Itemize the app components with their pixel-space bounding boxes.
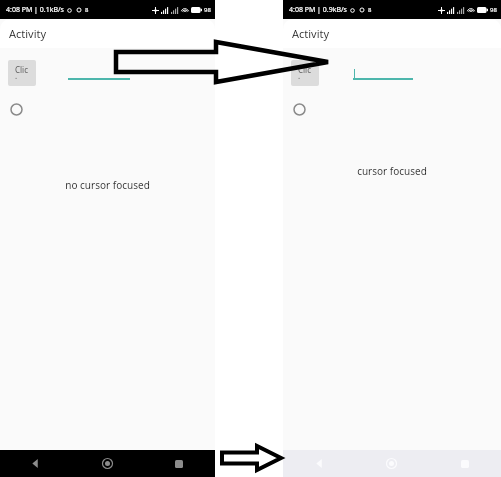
button[interactable] — [353, 66, 413, 80]
button[interactable]: Back — [0, 450, 71, 477]
button[interactable]: Clic . — [291, 60, 319, 86]
button[interactable]: Clic . — [8, 60, 36, 86]
staticText: no cursor focused — [0, 178, 215, 192]
staticText: 4:08 PM | 0.9kB/s — [289, 5, 347, 15]
staticText: Activity — [292, 26, 330, 41]
staticText: Clic . — [298, 64, 312, 82]
staticText: 8 — [85, 6, 89, 14]
staticText: 98 — [490, 6, 497, 14]
staticText: 98 — [204, 6, 211, 14]
button[interactable]: Recents — [143, 450, 215, 477]
staticText: 4:08 PM | 0.1kB/s — [6, 5, 64, 15]
staticText: Activity — [9, 26, 47, 41]
staticText: cursor focused — [283, 164, 501, 178]
staticText: Clic . — [15, 64, 29, 82]
button[interactable] — [68, 66, 130, 80]
staticText: 8 — [368, 6, 372, 14]
button[interactable] — [293, 103, 306, 116]
button[interactable]: Home — [71, 450, 143, 477]
button[interactable]: Back — [283, 450, 355, 477]
button[interactable] — [10, 103, 23, 116]
